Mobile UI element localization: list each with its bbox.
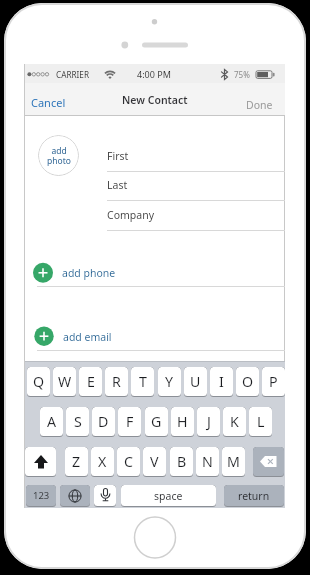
button[interactable]: Z (65, 447, 88, 477)
button[interactable] (94, 485, 116, 507)
button[interactable]: P (262, 367, 285, 397)
button[interactable]: Y (158, 367, 181, 397)
staticText: Z (72, 452, 81, 471)
button[interactable]: Cancel (31, 92, 66, 112)
staticText: G (151, 412, 162, 431)
button[interactable]: W (53, 367, 76, 397)
staticText: First (107, 149, 129, 163)
staticText: add phone (62, 266, 116, 280)
button[interactable] (25, 322, 260, 350)
staticText: I (219, 372, 224, 391)
button[interactable]: N (196, 447, 219, 477)
staticText: 123 (33, 489, 50, 502)
staticText: space (154, 489, 183, 503)
staticText: E (87, 372, 95, 391)
button[interactable] (60, 485, 90, 507)
button[interactable]: V (143, 447, 166, 477)
staticText: V (150, 452, 159, 471)
staticText: 75% (234, 69, 250, 80)
button[interactable]: L (249, 407, 272, 437)
staticText: B (177, 452, 187, 471)
staticText: N (202, 452, 213, 471)
staticText: D (98, 412, 109, 431)
button[interactable]: X (91, 447, 114, 477)
staticText: Q (33, 372, 45, 391)
staticText: R (112, 372, 121, 391)
button[interactable]: return (224, 485, 284, 507)
button[interactable]: T (131, 367, 154, 397)
button[interactable]: 123 (26, 485, 56, 507)
staticText: CARRIER (56, 69, 90, 80)
button[interactable]: F (118, 407, 141, 437)
staticText: add photo (47, 145, 71, 167)
staticText: Last (107, 178, 128, 192)
staticText: Done (246, 98, 273, 112)
button[interactable]: U (184, 367, 207, 397)
button[interactable]: add photo (38, 135, 79, 176)
button[interactable]: O (236, 367, 259, 397)
staticText: A (47, 412, 57, 431)
button[interactable]: B (170, 447, 193, 477)
button[interactable]: G (145, 407, 168, 437)
staticText: 4:00 PM (137, 68, 171, 80)
staticText: J (207, 412, 211, 431)
staticText: W (58, 372, 72, 391)
staticText: Y (165, 372, 174, 391)
button[interactable]: H (171, 407, 194, 437)
staticText: L (257, 412, 265, 431)
button[interactable]: S (66, 407, 89, 437)
staticText: S (74, 412, 82, 431)
staticText: M (227, 452, 240, 471)
button[interactable]: Q (27, 367, 50, 397)
button[interactable]: E (79, 367, 102, 397)
button[interactable]: J (197, 407, 220, 437)
staticText: add email (63, 330, 112, 344)
staticText: New Contact (122, 93, 188, 107)
button[interactable]: A (40, 407, 63, 437)
staticText: F (126, 412, 134, 431)
button[interactable]: M (222, 447, 245, 477)
staticText: U (190, 372, 201, 391)
staticText: P (269, 372, 278, 391)
button[interactable]: R (105, 367, 128, 397)
button[interactable] (25, 257, 260, 285)
staticText: H (177, 412, 188, 431)
staticText: C (124, 452, 133, 471)
button[interactable] (253, 447, 284, 477)
staticText: return (238, 489, 270, 503)
staticText: T (139, 372, 147, 391)
button[interactable]: D (92, 407, 115, 437)
staticText: X (98, 452, 107, 471)
button[interactable]: space (121, 485, 216, 507)
button[interactable] (25, 447, 56, 477)
button[interactable]: K (223, 407, 246, 437)
staticText: O (242, 372, 254, 391)
staticText: Cancel (31, 95, 66, 110)
button[interactable]: C (117, 447, 140, 477)
staticText: Company (107, 208, 154, 222)
staticText: K (230, 412, 239, 431)
button[interactable]: I (210, 367, 233, 397)
button[interactable]: Done (243, 95, 273, 115)
